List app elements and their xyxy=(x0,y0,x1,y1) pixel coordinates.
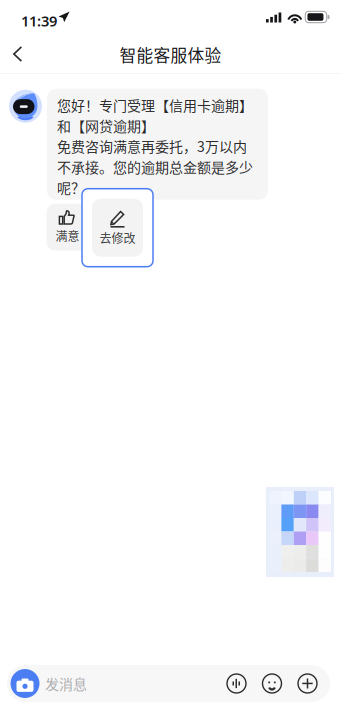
button[interactable]: 满意 xyxy=(46,204,88,251)
button[interactable]: 去修改 xyxy=(82,189,153,267)
button[interactable]: Voice message xyxy=(221,665,251,702)
button[interactable]: More xyxy=(292,665,322,702)
staticText: 您好！专门受理【信用卡逾期】 和【网贷逾期】 免费咨询满意再委托，3万以内 不承… xyxy=(57,95,253,197)
staticText: 去修改 xyxy=(99,229,135,246)
staticText: 满意 xyxy=(55,227,79,244)
button[interactable]: 发消息 xyxy=(45,665,215,702)
button[interactable]: Camera xyxy=(8,665,41,702)
staticText: 11:39 xyxy=(21,11,57,30)
staticText: 发消息 xyxy=(45,673,87,694)
staticText: 智能客服体验 xyxy=(119,42,221,66)
button[interactable]: Back xyxy=(0,36,42,73)
button[interactable]: Emoji xyxy=(257,665,287,702)
